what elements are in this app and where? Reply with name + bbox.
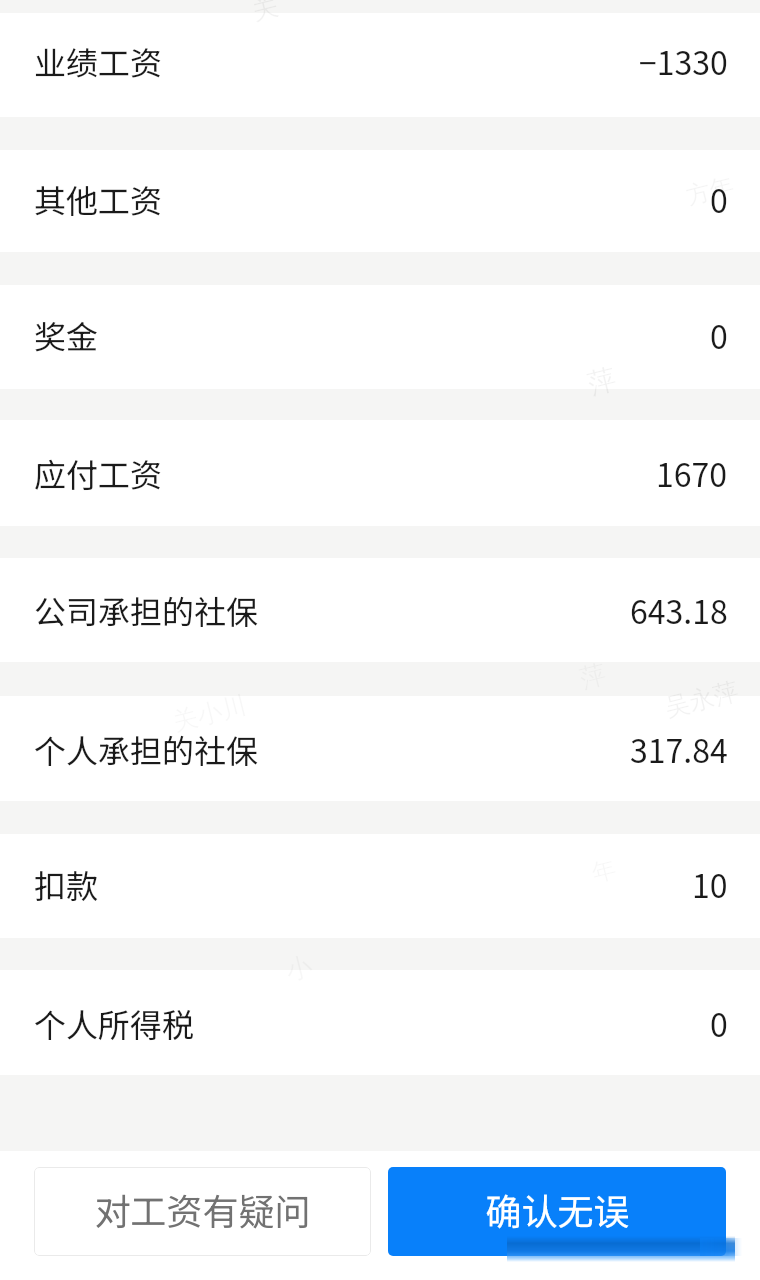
staticText: 0 (710, 176, 728, 222)
staticText: −1330 (639, 38, 728, 84)
button[interactable]: 奖金 (0, 285, 760, 389)
staticText: 业绩工资 (34, 38, 163, 84)
staticText: 小 (282, 949, 316, 988)
staticText: 关 (248, 0, 282, 28)
staticText: 吴永萍 (661, 675, 742, 724)
staticText: 10 (692, 861, 728, 907)
staticText: 方年 (683, 171, 737, 211)
staticText: 萍 (576, 657, 610, 696)
staticText: 317.84 (630, 726, 728, 772)
button[interactable]: 业绩工资 (0, 13, 760, 117)
staticText: 确认无误 (485, 1183, 630, 1235)
staticText: 扣款 (34, 861, 99, 907)
button[interactable]: 对工资有疑问 (34, 1167, 371, 1256)
staticText: 其他工资 (34, 176, 163, 222)
button[interactable]: 公司承担的社保 (0, 558, 760, 662)
staticText: 个人承担的社保 (34, 726, 259, 772)
staticText: 萍 (584, 361, 620, 402)
button[interactable]: 扣款 (0, 834, 760, 938)
staticText: 0 (710, 1000, 728, 1046)
button[interactable]: 个人所得税 (0, 970, 760, 1075)
staticText: 对工资有疑问 (94, 1183, 311, 1235)
staticText: 奖金 (34, 312, 99, 358)
button[interactable]: 应付工资 (0, 420, 760, 526)
button[interactable]: 个人承担的社保 (0, 696, 760, 801)
staticText: 643.18 (630, 587, 728, 633)
button[interactable]: 其他工资 (0, 150, 760, 252)
staticText: 应付工资 (34, 450, 163, 496)
button[interactable]: 确认无误 (388, 1167, 726, 1256)
staticText: 关小川 (169, 689, 250, 738)
staticText: 个人所得税 (34, 1000, 195, 1046)
staticText: 0 (710, 312, 728, 358)
staticText: 1670 (656, 450, 728, 496)
staticText: 公司承担的社保 (34, 587, 259, 633)
